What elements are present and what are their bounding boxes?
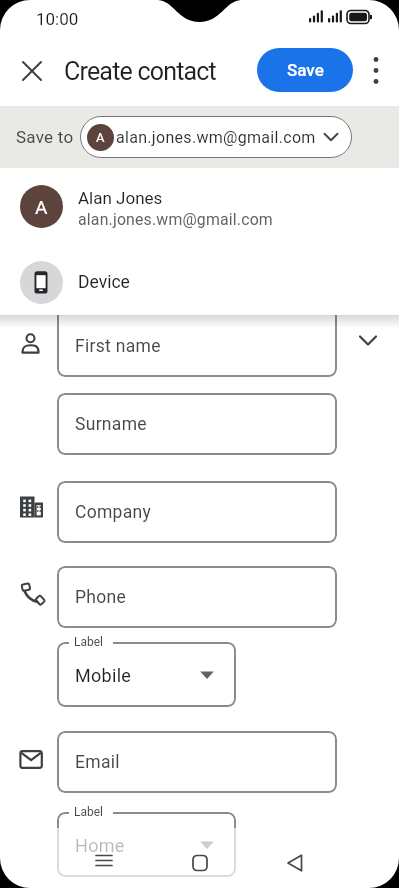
staticText: Phone [75,587,127,608]
staticText: A [96,130,105,145]
button[interactable]: A [80,116,352,158]
staticText: alan.jones.wm@gmail.com [116,128,316,147]
staticText: Surname [75,414,147,435]
staticText: Device [78,272,130,293]
staticText: Label [74,635,104,649]
staticText: Alan Jones [78,188,163,208]
staticText: Label [74,805,104,819]
staticText: Email [75,752,120,773]
button[interactable]: First name [57,308,337,377]
staticText: First name [75,336,161,357]
button[interactable] [84,838,124,878]
button[interactable]: Email [57,731,337,793]
staticText: Create contact [64,57,216,86]
staticText: alan.jones.wm@gmail.com [78,210,273,229]
staticText: Company [75,502,152,523]
staticText: Save [287,60,324,80]
button[interactable]: A [0,178,399,242]
button[interactable]: Company [57,481,337,543]
staticText: 10:00 [36,9,79,29]
button[interactable] [57,812,236,877]
button[interactable] [12,51,52,91]
staticText: Mobile [75,665,132,686]
button[interactable]: Phone [57,566,337,628]
staticText: A [35,196,48,218]
button[interactable] [360,50,392,90]
button[interactable]: Surname [57,393,337,455]
button[interactable] [57,642,236,707]
staticText: Save to [16,127,74,147]
button[interactable] [180,838,220,878]
button[interactable] [274,838,314,878]
button[interactable]: Save [257,48,353,92]
staticText: Home [75,835,125,856]
button[interactable]: Device [0,260,399,304]
